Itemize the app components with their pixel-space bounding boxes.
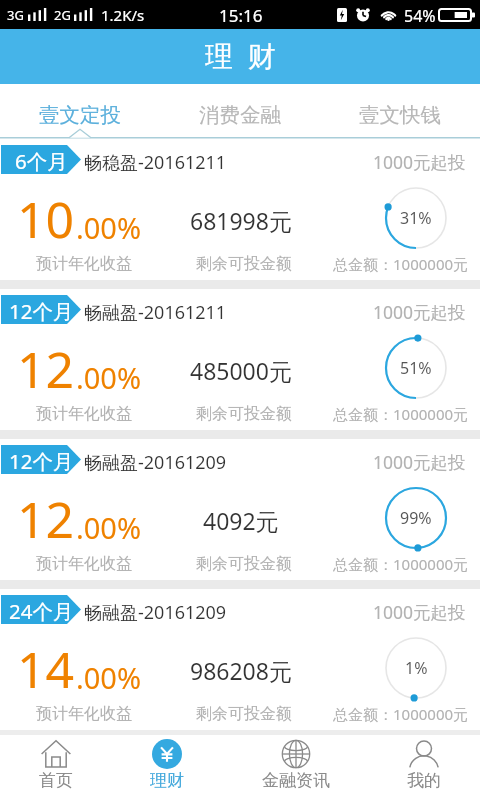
staticText: 理 财	[205, 36, 276, 74]
staticText: 剩余可投金额	[196, 704, 292, 724]
button[interactable]: 消费金融	[160, 84, 320, 139]
button[interactable]: Profile	[407, 739, 441, 791]
button[interactable]: 壹文快钱	[320, 84, 480, 139]
staticText: 总金额：1000000元	[333, 254, 469, 274]
staticText: 3G	[7, 6, 24, 24]
staticText: 预计年化收益	[36, 554, 132, 574]
staticText: 壹文快钱	[359, 102, 441, 128]
staticText: 畅融盈-20161209	[84, 450, 227, 475]
staticText: 24个月	[9, 597, 74, 625]
staticText: 剩余可投金额	[196, 554, 292, 574]
staticText: 1%	[405, 657, 428, 679]
staticText: 1000元起投	[373, 600, 466, 624]
staticText: 壹文定投	[39, 102, 121, 128]
staticText: .00%	[76, 358, 142, 397]
staticText: 我的	[407, 770, 441, 791]
staticText: .00%	[76, 208, 142, 247]
button[interactable]: Home	[39, 739, 73, 791]
staticText: 金融资讯	[262, 770, 330, 791]
staticText: 预计年化收益	[36, 254, 132, 274]
staticText: 14	[17, 635, 75, 703]
button[interactable]: 壹文定投	[0, 84, 160, 139]
staticText: 消费金融	[199, 102, 281, 128]
staticText: 31%	[400, 207, 432, 229]
staticText: 4092元	[203, 505, 279, 536]
button[interactable]: 6个月	[0, 139, 480, 280]
staticText: 986208元	[190, 655, 292, 686]
staticText: 6个月	[15, 147, 68, 175]
staticText: 剩余可投金额	[196, 254, 292, 274]
staticText: 畅融盈-20161209	[84, 600, 227, 625]
staticText: 预计年化收益	[36, 404, 132, 424]
staticText: 10	[17, 185, 75, 253]
staticText: 1.2K/s	[101, 5, 145, 25]
staticText: 12	[17, 485, 75, 553]
staticText: 12个月	[9, 297, 74, 325]
staticText: 畅融盈-20161211	[84, 300, 227, 325]
staticText: 51%	[400, 357, 432, 379]
staticText: 总金额：1000000元	[333, 704, 469, 724]
staticText: 99%	[400, 507, 432, 529]
staticText: 485000元	[190, 355, 292, 386]
staticText: 总金额：1000000元	[333, 554, 469, 574]
staticText: 预计年化收益	[36, 704, 132, 724]
staticText: 54%	[404, 5, 436, 27]
button[interactable]: 12个月	[0, 439, 480, 580]
staticText: 1000元起投	[373, 450, 466, 474]
staticText: 2G	[54, 6, 71, 24]
button[interactable]: 12个月	[0, 289, 480, 430]
staticText: 12个月	[9, 447, 74, 475]
staticText: 剩余可投金额	[196, 404, 292, 424]
staticText: 12	[17, 335, 75, 403]
button[interactable]: 24个月	[0, 589, 480, 730]
button[interactable]: News	[262, 739, 330, 791]
staticText: 畅稳盈-20161211	[84, 150, 227, 175]
staticText: 1000元起投	[373, 150, 466, 174]
staticText: 681998元	[190, 205, 292, 236]
staticText: 理财	[150, 770, 184, 791]
staticText: 15:16	[219, 4, 263, 27]
staticText: .00%	[76, 508, 142, 547]
button[interactable]: Finance	[150, 739, 184, 791]
staticText: 总金额：1000000元	[333, 404, 469, 424]
staticText: .00%	[76, 658, 142, 697]
staticText: 首页	[39, 770, 73, 791]
staticText: 1000元起投	[373, 300, 466, 324]
